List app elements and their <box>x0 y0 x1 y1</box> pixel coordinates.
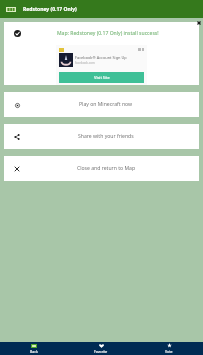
button[interactable]: Close and return to Map <box>4 156 199 181</box>
staticText: Close and return to Map <box>77 165 136 172</box>
button[interactable]: Favorite <box>67 342 135 355</box>
staticText: Back <box>30 349 38 354</box>
staticText: facebook.com <box>75 61 95 65</box>
button[interactable]: Visit Site <box>59 72 144 83</box>
staticText: Visit Site <box>94 75 110 80</box>
button[interactable]: Facebook® Account Sign Up <box>56 45 147 85</box>
staticText: Map: Redstoney (0.17 Only) install succe… <box>57 30 159 37</box>
button[interactable]: Vote <box>135 342 203 355</box>
staticText: Favorite <box>94 349 108 354</box>
staticText: Play on Minecraft now <box>79 101 133 108</box>
button[interactable]: Close <box>195 19 203 27</box>
button[interactable]: Back <box>0 342 67 355</box>
button[interactable]: Play on Minecraft now <box>4 92 199 117</box>
staticText: Facebook® Account Sign Up <box>75 55 127 60</box>
button[interactable]: Share with your friends <box>4 124 199 149</box>
staticText: Vote <box>165 349 173 354</box>
staticText: Share with your friends <box>78 133 134 140</box>
staticText: Redstoney (0.17 Only) <box>23 6 77 13</box>
